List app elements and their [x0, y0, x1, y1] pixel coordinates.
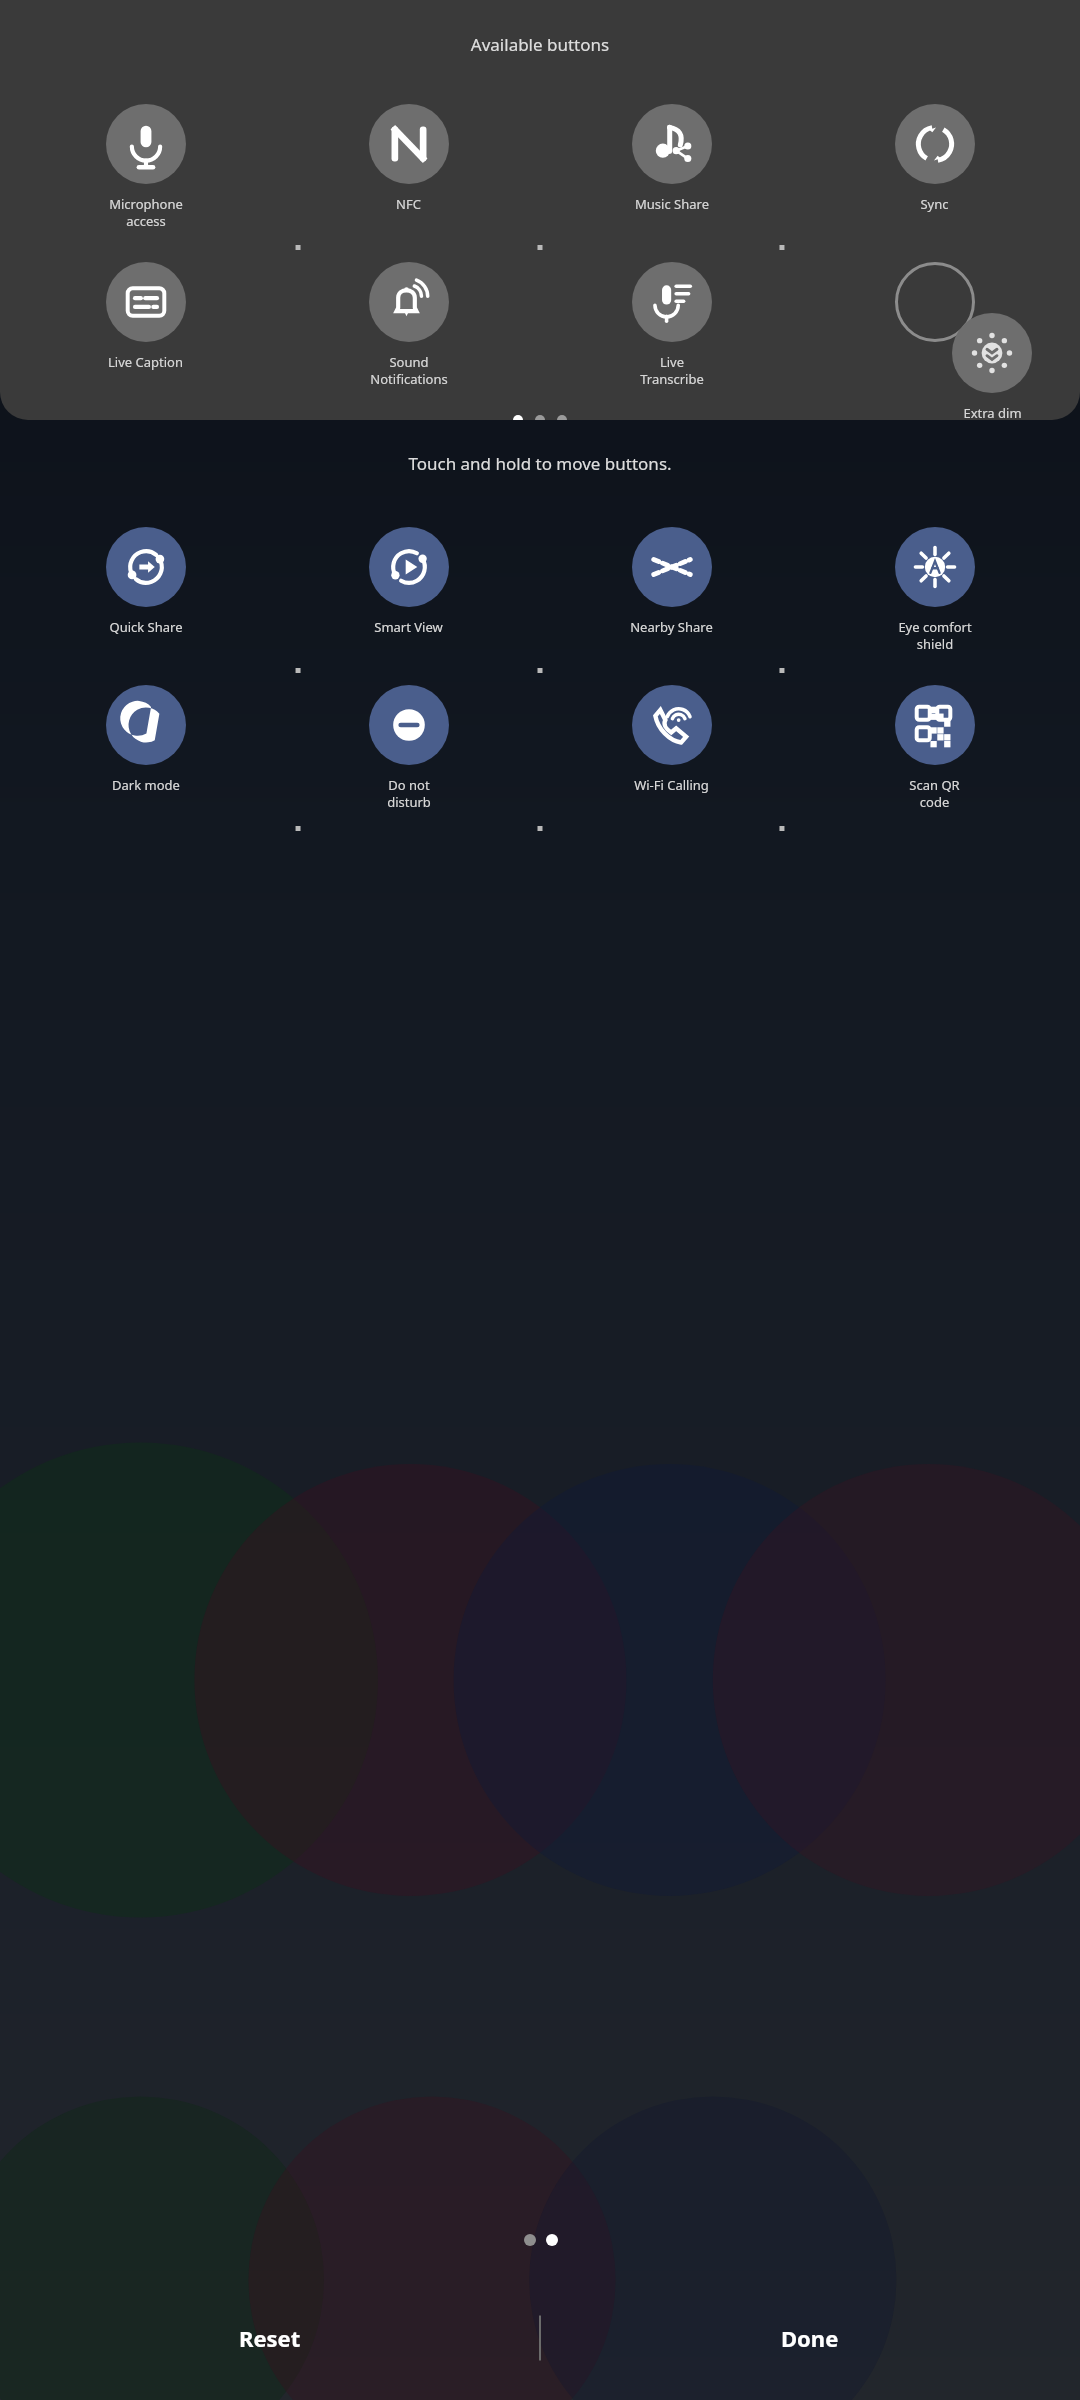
- button[interactable]: Do not disturb: [277, 685, 540, 811]
- button[interactable]: NFC: [277, 104, 540, 213]
- staticText: NFC: [396, 195, 421, 213]
- staticText: Reset: [239, 2323, 301, 2353]
- button[interactable]: NFC: [369, 104, 449, 184]
- button[interactable]: Microphone access: [14, 104, 277, 230]
- button[interactable]: Music Share: [540, 104, 803, 213]
- staticText: Live Caption: [108, 353, 183, 371]
- button[interactable]: Live Caption: [14, 262, 277, 371]
- button[interactable]: Wi-Fi Calling: [632, 685, 712, 765]
- staticText: Microphone access: [109, 195, 183, 230]
- staticText: Done: [781, 2323, 839, 2353]
- staticText: Smart View: [374, 618, 443, 636]
- staticText: Available buttons: [0, 33, 1080, 56]
- button[interactable]: Scan QR code: [803, 685, 1066, 811]
- staticText: Extra dim: [963, 404, 1022, 420]
- button[interactable]: Music Share: [632, 104, 712, 184]
- button[interactable]: Extra dim: [952, 313, 1032, 393]
- button[interactable]: Dark mode: [106, 685, 186, 765]
- staticText: Eye comfort shield: [898, 618, 972, 653]
- button[interactable]: Sync: [895, 104, 975, 184]
- button[interactable]: Wi-Fi Calling: [540, 685, 803, 794]
- staticText: Scan QR code: [909, 776, 960, 811]
- staticText: Nearby Share: [630, 618, 713, 636]
- button[interactable]: Sound Notifications: [277, 262, 540, 388]
- button[interactable]: Eye comfort shield: [803, 527, 1066, 653]
- button[interactable]: Microphone access: [106, 104, 186, 184]
- staticText: Dark mode: [112, 776, 180, 794]
- staticText: Wi-Fi Calling: [634, 776, 709, 794]
- button[interactable]: Done: [540, 2298, 1080, 2378]
- button[interactable]: Nearby Share: [632, 527, 712, 607]
- button[interactable]: Dark mode: [14, 685, 277, 794]
- staticText: Quick Share: [109, 618, 183, 636]
- button[interactable]: Live Transcribe: [540, 262, 803, 388]
- button[interactable]: Quick Share: [14, 527, 277, 636]
- button[interactable]: Nearby Share: [540, 527, 803, 636]
- staticText: Live Transcribe: [640, 353, 704, 388]
- button[interactable]: Reset: [0, 2298, 540, 2378]
- staticText: Sound Notifications: [370, 353, 448, 388]
- button[interactable]: Live Transcribe: [632, 262, 712, 342]
- button[interactable]: Smart View: [277, 527, 540, 636]
- button[interactable]: Eye comfort shield: [895, 527, 975, 607]
- button[interactable]: Do not disturb: [369, 685, 449, 765]
- staticText: Music Share: [635, 195, 709, 213]
- button[interactable]: Smart View: [369, 527, 449, 607]
- button[interactable]: Sync: [803, 104, 1066, 213]
- button[interactable]: Extra dim: [952, 313, 1032, 420]
- staticText: Do not disturb: [387, 776, 431, 811]
- button[interactable]: Sound Notifications: [369, 262, 449, 342]
- staticText: Sync: [920, 195, 949, 213]
- button[interactable]: Scan QR code: [895, 685, 975, 765]
- staticText: Touch and hold to move buttons.: [0, 452, 1080, 475]
- button[interactable]: Quick Share: [106, 527, 186, 607]
- button[interactable]: Live Caption: [106, 262, 186, 342]
